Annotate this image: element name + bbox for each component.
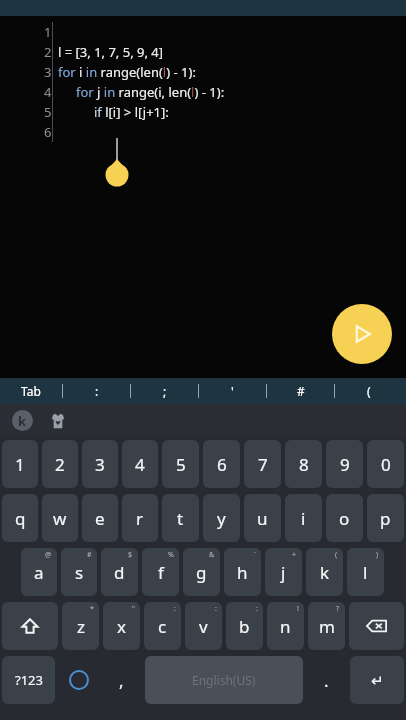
button[interactable]: n [267,602,304,650]
button[interactable]: . [307,656,346,704]
button[interactable]: 5 [162,440,199,488]
staticText: u [257,507,268,530]
button[interactable]: s [61,548,97,596]
staticText: 3 [95,453,105,476]
staticText: ( [367,383,371,399]
staticText: 7 [258,453,268,476]
button[interactable]: Emoji [59,656,98,704]
staticText: 3 [44,63,52,81]
button[interactable]: 2 [42,440,78,488]
button[interactable]: 1 [2,440,38,488]
staticText: for j in range(i, len(l) - 1): [76,83,225,101]
staticText: a [34,561,44,584]
staticText: 8 [299,453,309,476]
button[interactable]: ?123 [2,656,55,704]
staticText: @ [45,550,52,560]
button[interactable]: v [185,602,222,650]
button[interactable]: 9 [326,440,363,488]
button[interactable]: 7 [244,440,281,488]
button[interactable]: , [102,656,141,704]
button[interactable]: l [347,548,384,596]
staticText: ( [335,550,338,560]
button[interactable]: h [224,548,261,596]
staticText: if l[i] > l[j+1]: [94,103,169,121]
staticText: q [15,507,26,530]
staticText: % [168,550,174,560]
staticText: h [237,561,248,584]
staticText: English(US) [192,672,256,688]
staticText: o [339,507,350,530]
button[interactable]: Backspace [349,602,404,650]
staticText: z [77,615,85,638]
button[interactable]: 8 [285,440,322,488]
button[interactable]: f [142,548,179,596]
staticText: + [292,550,297,560]
button[interactable]: e [82,494,118,542]
button[interactable]: i [285,494,322,542]
staticText: Tab [21,383,41,399]
staticText: . [324,669,329,692]
button[interactable]: z [62,602,99,650]
button[interactable]: w [42,494,78,542]
staticText: c [158,615,167,638]
staticText: l = [3, 1, 7, 5, 9, 4] [58,43,164,61]
staticText: ?123 [15,671,43,689]
button[interactable]: u [244,494,281,542]
staticText: : [256,604,258,614]
staticText: f [158,561,164,584]
button[interactable]: Stickers [47,410,69,432]
button[interactable]: Keyboard settings [12,410,33,431]
button[interactable]: q [2,494,38,542]
button[interactable]: Shift [2,602,58,650]
staticText: , [119,669,124,692]
staticText: 2 [55,453,65,476]
staticText: b [239,615,250,638]
staticText: v [199,615,208,638]
staticText: 0 [381,453,391,476]
button[interactable]: g [183,548,220,596]
staticText: j [281,561,286,584]
staticText: 6 [217,453,227,476]
staticText: 5 [44,103,52,121]
button[interactable]: r [122,494,158,542]
button[interactable]: b [226,602,263,650]
button[interactable]: ' [199,378,266,404]
staticText: : [174,604,176,614]
staticText: k [18,412,27,430]
button[interactable]: : [63,378,130,404]
button[interactable]: y [203,494,240,542]
staticText: x [117,615,126,638]
button[interactable]: o [326,494,363,542]
button[interactable]: ( [335,378,402,404]
button[interactable]: a [21,548,57,596]
button[interactable]: 6 [203,440,240,488]
button[interactable]: k [306,548,343,596]
button[interactable]: p [367,494,404,542]
button[interactable]: Enter [350,656,404,704]
button[interactable]: English(US) [145,656,303,704]
button[interactable]: c [144,602,181,650]
button[interactable]: 3 [82,440,118,488]
staticText: : [95,383,99,399]
button[interactable]: x [103,602,140,650]
staticText: 4 [135,453,145,476]
staticText: 2 [44,43,52,61]
button[interactable]: j [265,548,302,596]
button[interactable]: d [101,548,138,596]
staticText: & [209,550,215,560]
button[interactable]: t [162,494,199,542]
button[interactable]: Tab [0,378,62,404]
staticText: : [215,604,217,614]
staticText: r [136,507,144,530]
staticText: # [297,383,305,399]
button[interactable]: # [267,378,334,404]
staticText: ) [376,550,379,560]
button[interactable]: m [308,602,345,650]
staticText: t [177,507,184,530]
button[interactable]: 4 [122,440,158,488]
button[interactable]: Run [332,304,392,364]
button[interactable]: ; [131,378,198,404]
button[interactable]: 0 [367,440,404,488]
staticText: y [217,507,226,530]
staticText: m [319,615,335,638]
